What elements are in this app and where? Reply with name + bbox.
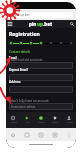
staticText: Live (25, 121, 30, 124)
button[interactable]: Menu (6, 20, 14, 28)
button[interactable]: Username admin (9, 103, 73, 110)
staticText: pin (29, 21, 37, 27)
button[interactable] (9, 41, 13, 45)
staticText: I have had old accounts (9, 58, 43, 62)
button[interactable] (49, 41, 53, 45)
button[interactable] (29, 41, 33, 45)
button[interactable]: Profile (62, 112, 76, 128)
staticText: Username admin (11, 105, 36, 109)
button[interactable]: pin-up.bet (9, 12, 73, 18)
button[interactable]: Bonus (48, 112, 62, 128)
button[interactable]: Browser action (48, 128, 62, 141)
staticText: I don't fully have an account (9, 99, 49, 103)
button[interactable]: Live (20, 112, 34, 128)
staticText: Bonus (52, 121, 59, 124)
staticText: Casino (10, 121, 17, 124)
staticText: Email (9, 56, 17, 60)
staticText: Address (9, 80, 21, 84)
button[interactable] (9, 62, 73, 69)
staticText: Registration (9, 31, 40, 38)
button[interactable]: Browser action (62, 128, 76, 141)
button[interactable]: Casino (6, 112, 20, 128)
button[interactable] (59, 41, 63, 45)
staticText: Sports (38, 121, 45, 124)
staticText: Repeat Email (9, 68, 28, 72)
button[interactable]: Search (68, 20, 76, 28)
button[interactable]: Browser action (20, 128, 34, 141)
button[interactable] (9, 86, 73, 93)
staticText: Profile (66, 121, 73, 124)
button[interactable] (39, 41, 43, 45)
staticText: pin-up.bet (15, 13, 30, 17)
button[interactable]: Browser action (34, 128, 48, 141)
button[interactable] (19, 41, 23, 45)
button[interactable]: Sports (34, 112, 48, 128)
staticText: .bet (43, 21, 53, 27)
staticText: Contact details (9, 50, 30, 54)
staticText: up (37, 21, 43, 27)
button[interactable] (9, 74, 73, 81)
button[interactable]: Browser action (6, 128, 20, 141)
button[interactable] (69, 41, 73, 45)
